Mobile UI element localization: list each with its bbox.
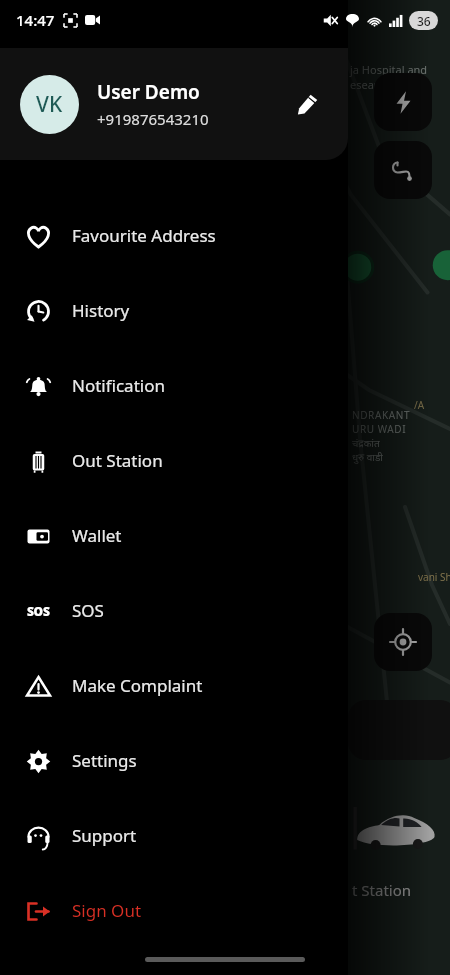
staticText: t Station [352, 880, 412, 900]
button[interactable]: Make Complaint [0, 648, 348, 723]
staticText: चंद्रकांत [352, 436, 380, 450]
button[interactable]: Quick ride [374, 73, 432, 131]
staticText: vani Sh [418, 570, 450, 584]
button[interactable]: Wallet [0, 498, 348, 573]
button[interactable]: SOS [0, 573, 348, 648]
staticText: 14:47 [16, 10, 55, 30]
staticText: धुरु वाडी [352, 450, 383, 464]
button[interactable]: Support [0, 798, 348, 873]
staticText: SOS [27, 603, 50, 619]
staticText: VK [36, 90, 63, 119]
staticText: History [72, 299, 130, 322]
button[interactable]: Notification [0, 348, 348, 423]
button[interactable]: History [0, 273, 348, 348]
staticText: URU WADI [352, 422, 407, 436]
button[interactable]: Sign Out [0, 873, 348, 948]
staticText: +919876543210 [97, 109, 209, 129]
button[interactable]: Settings [0, 723, 348, 798]
button[interactable]: Edit profile [288, 84, 328, 124]
staticText: ja Hospital and [350, 62, 428, 77]
staticText: NDRAKANT [352, 408, 411, 422]
staticText: Sign Out [72, 899, 142, 922]
staticText: /A [414, 398, 425, 412]
button[interactable]: Route [374, 141, 432, 199]
staticText: 36 [417, 13, 431, 29]
staticText: Make Complaint [72, 674, 203, 697]
staticText: Out Station [72, 449, 163, 472]
staticText: Notification [72, 374, 165, 397]
staticText: Wallet [72, 524, 122, 547]
button[interactable]: Out Station [0, 423, 348, 498]
staticText: Support [72, 824, 137, 847]
staticText: SOS [72, 599, 104, 622]
button[interactable]: My location [374, 613, 432, 671]
staticText: Settings [72, 749, 137, 772]
button[interactable]: VK [0, 48, 348, 160]
staticText: Favourite Address [72, 224, 216, 247]
button[interactable]: Favourite Address [0, 198, 348, 273]
staticText: User Demo [97, 79, 200, 105]
staticText: esearch Centre [350, 77, 428, 92]
